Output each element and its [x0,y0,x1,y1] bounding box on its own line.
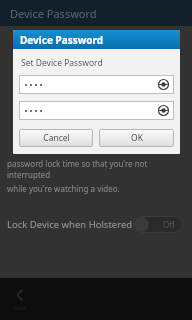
button[interactable]: Show password [19,75,174,94]
staticText: Back [14,304,27,311]
staticText: password lock time so that you're not in… [7,158,192,180]
staticText: Cancel [43,132,70,144]
button[interactable]: Lock Device when Holstered [0,212,192,236]
button[interactable]: Back [0,278,40,320]
button[interactable]: Show password [157,104,170,117]
staticText: Lock Device when Holstered [7,218,133,231]
staticText: Off [163,219,175,230]
staticText: Set Device Password [21,57,103,69]
button[interactable]: OK [99,129,174,147]
staticText: while you're watching a video. [7,183,120,194]
staticText: OK [131,132,143,144]
staticText: Device Password [20,33,104,47]
button[interactable]: Cancel [19,129,93,147]
staticText: Device Password [10,6,97,21]
button[interactable]: Show password [19,101,174,120]
button[interactable]: Show password [157,78,170,91]
other: Lock Device when Holstered toggle, Off [133,216,183,233]
